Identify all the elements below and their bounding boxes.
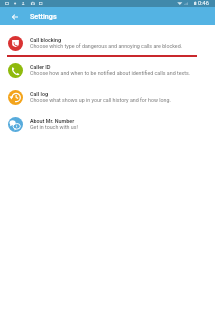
button[interactable]: Call blocking xyxy=(0,30,215,57)
staticText: Choose which type of dangerous and annoy… xyxy=(30,43,183,49)
staticText: Caller ID xyxy=(30,64,51,70)
staticText: 0:46 xyxy=(198,0,209,7)
staticText: Choose what shows up in your call histor… xyxy=(30,97,171,103)
staticText: Choose how and when to be notified about… xyxy=(30,70,191,76)
staticText: Call blocking xyxy=(30,37,62,43)
staticText: Call log xyxy=(30,91,48,97)
button[interactable]: Call log xyxy=(0,84,215,111)
staticText: Get in touch with us! xyxy=(30,124,78,130)
button[interactable]: Back xyxy=(7,9,23,25)
staticText: Settings xyxy=(30,12,57,20)
staticText: About Mr. Number xyxy=(30,118,75,124)
button[interactable]: Caller ID xyxy=(0,57,215,84)
button[interactable]: About Mr. Number xyxy=(0,111,215,138)
